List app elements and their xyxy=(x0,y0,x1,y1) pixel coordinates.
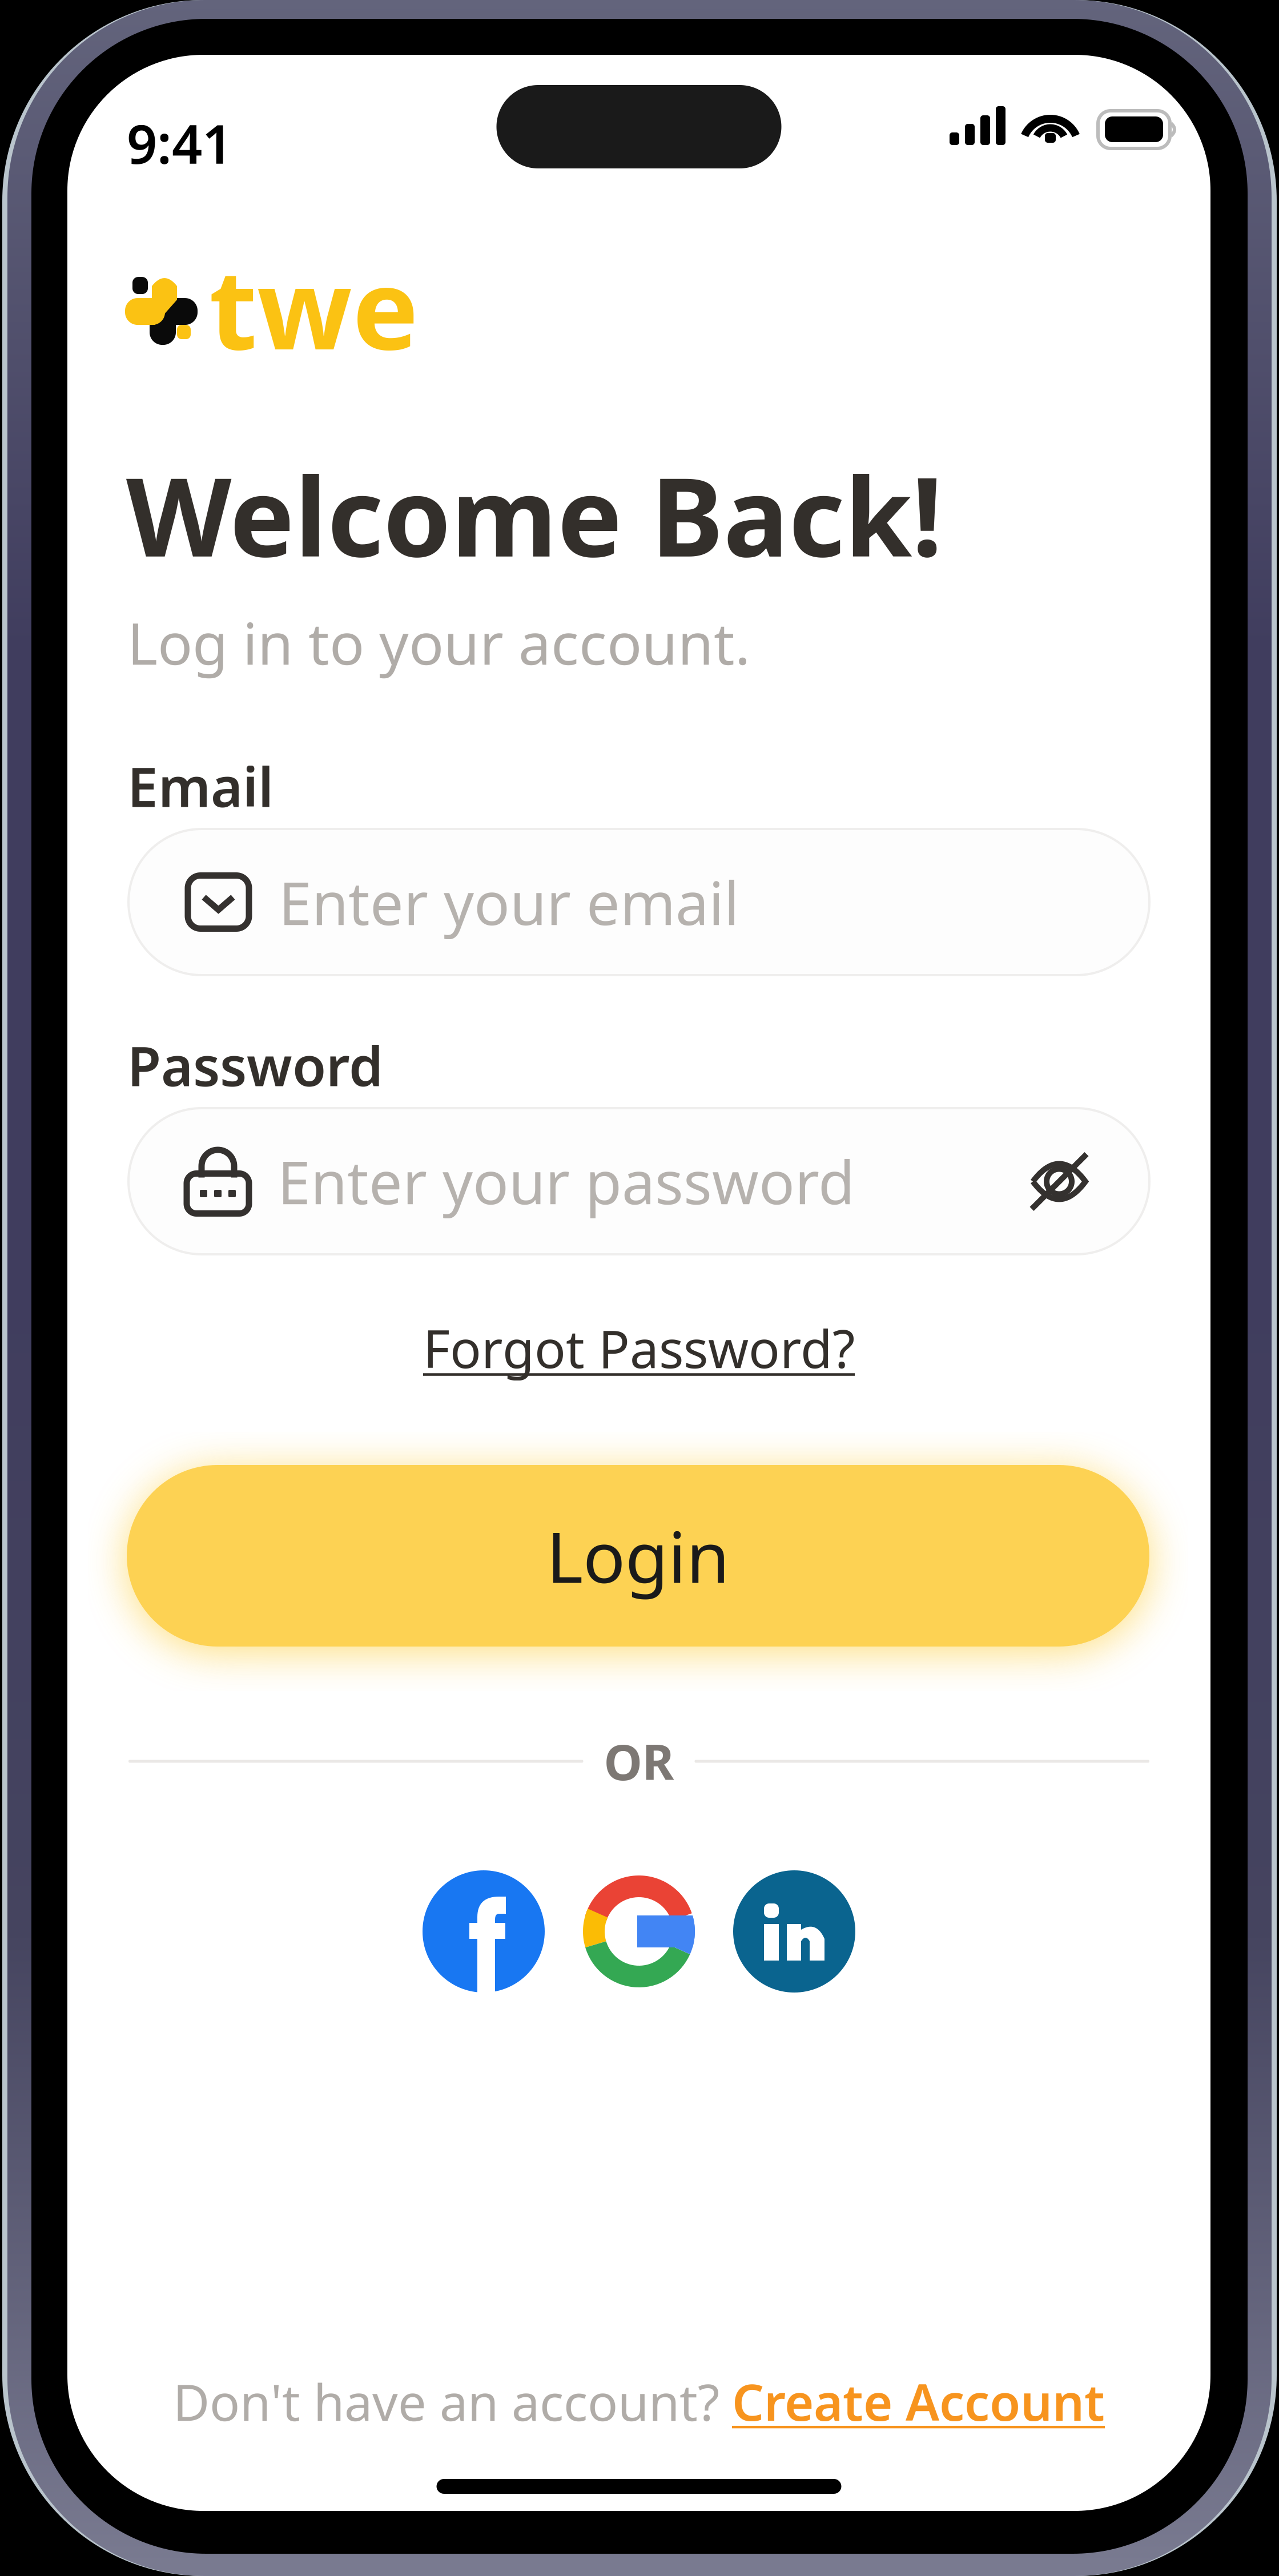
button[interactable]: Sign in with Google xyxy=(578,1870,700,1993)
staticText: Log in to your account. xyxy=(127,603,750,682)
staticText: Password xyxy=(127,1028,383,1102)
button[interactable]: Enter your password xyxy=(128,1108,1149,1254)
button[interactable]: Sign in with LinkedIn xyxy=(733,1870,855,1993)
staticText: OR xyxy=(604,1728,674,1794)
button[interactable]: Login xyxy=(127,1465,1149,1647)
staticText: 9:41 xyxy=(127,107,232,179)
staticText: Welcome Back! xyxy=(126,440,943,588)
staticText: Enter your email xyxy=(279,862,739,942)
staticText: Enter your password xyxy=(277,1141,855,1222)
button[interactable]: Enter your email xyxy=(128,829,1149,975)
button[interactable]: Forgot Password? xyxy=(423,1313,855,1383)
staticText: Email xyxy=(127,748,274,823)
button[interactable]: Sign in with Facebook xyxy=(423,1870,545,1993)
staticText: twe xyxy=(209,231,419,382)
staticText: Forgot Password? xyxy=(423,1313,855,1383)
staticText: Create Account xyxy=(732,2367,1105,2436)
staticText: Don't have an account? xyxy=(173,2367,719,2436)
staticText: Login xyxy=(546,1508,730,1603)
button[interactable]: Create Account xyxy=(732,2367,1105,2436)
